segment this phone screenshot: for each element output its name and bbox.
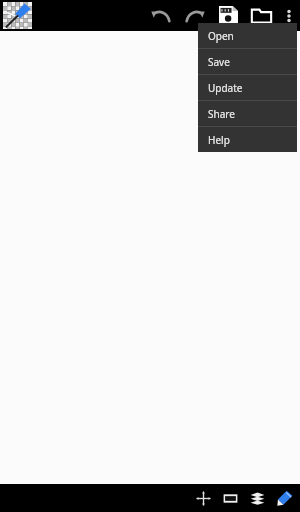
button[interactable]: Update [198,75,297,100]
button[interactable]: Move [190,484,217,512]
button[interactable]: Layers [244,484,271,512]
button[interactable]: Canvas size [217,484,244,512]
button[interactable]: Open folder [244,0,278,31]
button[interactable]: Export PNG [212,0,244,31]
staticText: Share [208,107,235,121]
button[interactable]: Help [198,127,297,152]
button[interactable]: App icon, up [3,2,32,29]
button[interactable]: More options [278,0,300,31]
button[interactable]: Redo [178,0,212,31]
button[interactable]: Open [198,23,297,48]
staticText: Help [208,133,230,147]
button[interactable]: Undo [144,0,178,31]
button[interactable]: Brush tool [271,484,298,512]
staticText: Open [208,29,234,43]
staticText: Update [208,81,243,95]
button[interactable]: Save [198,49,297,74]
button[interactable]: Share [198,101,297,126]
staticText: Save [208,55,230,69]
